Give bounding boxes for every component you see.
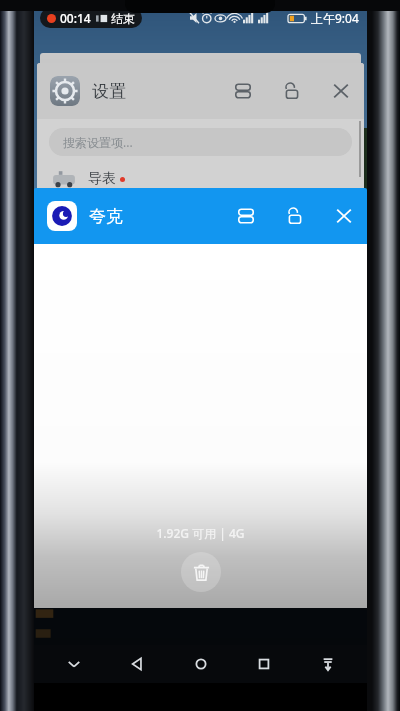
staticText: 设置 (92, 81, 126, 102)
staticText: 夸克 (89, 206, 123, 227)
button[interactable]: 关闭 (331, 81, 351, 101)
button[interactable]: 最近任务 (240, 645, 288, 683)
button[interactable]: 夸克 (34, 188, 367, 608)
button[interactable]: 清除全部 (181, 552, 221, 592)
button[interactable]: 关闭 (334, 206, 354, 226)
staticText: 导表 (88, 170, 116, 188)
button[interactable]: 00:14 (47, 10, 135, 26)
button[interactable]: 收起 (50, 645, 98, 683)
button[interactable]: 下拉通知 (304, 645, 352, 683)
staticText: 1.92G 可用 | 4G (156, 525, 245, 541)
button[interactable] (40, 53, 361, 93)
staticText: 00:14 (60, 10, 91, 26)
button[interactable]: 主页 (177, 645, 225, 683)
button[interactable]: 锁定 (285, 206, 305, 226)
staticText: 搜索设置项... (63, 134, 133, 150)
button[interactable]: 设置 (37, 63, 364, 253)
button[interactable]: 搜索设置项... (49, 128, 352, 156)
button[interactable]: 分屏 (236, 206, 256, 226)
staticText: 上午9:04 (311, 10, 359, 26)
button[interactable]: 返回 (113, 645, 161, 683)
button[interactable]: 分屏 (233, 81, 253, 101)
button[interactable]: 锁定 (282, 81, 302, 101)
staticText: 结束 (111, 11, 135, 26)
